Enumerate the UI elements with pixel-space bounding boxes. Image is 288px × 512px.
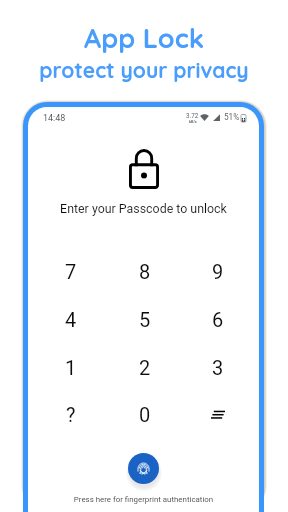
staticText: ? [66, 403, 76, 426]
staticText: protect your privacy [0, 57, 288, 83]
button[interactable]: 8 [115, 249, 175, 293]
button[interactable]: 2 [115, 345, 175, 389]
staticText: 3.72 [186, 112, 199, 119]
staticText: Press here for fingerprint authenticatio… [28, 495, 259, 504]
staticText: 14:48 [43, 113, 66, 124]
staticText: Enter your Passcode to unlock [28, 201, 259, 216]
button[interactable]: Backspace [188, 392, 248, 436]
staticText: 0 [139, 403, 151, 426]
button[interactable]: 5 [115, 297, 175, 341]
staticText: 9 [212, 260, 224, 283]
staticText: App Lock [0, 21, 288, 55]
button[interactable]: 7 [41, 249, 101, 293]
button[interactable]: 4 [41, 297, 101, 341]
other: Backspace [211, 410, 225, 418]
button[interactable]: ? [41, 392, 101, 436]
staticText: 3 [212, 356, 224, 379]
button[interactable]: 1 [41, 345, 101, 389]
button[interactable]: 3 [188, 345, 248, 389]
staticText: 5 [139, 308, 151, 331]
staticText: 4 [65, 308, 77, 331]
button[interactable]: Fingerprint authentication [128, 453, 159, 484]
staticText: 2 [139, 356, 151, 379]
button[interactable]: 0 [115, 392, 175, 436]
staticText: 6 [212, 308, 224, 331]
staticText: 8 [139, 260, 151, 283]
button[interactable]: 6 [188, 297, 248, 341]
button[interactable]: 9 [188, 249, 248, 293]
staticText: kB/s [189, 119, 197, 123]
staticText: 1 [65, 356, 77, 379]
staticText: 7 [65, 260, 77, 283]
staticText: 51% [224, 112, 240, 122]
